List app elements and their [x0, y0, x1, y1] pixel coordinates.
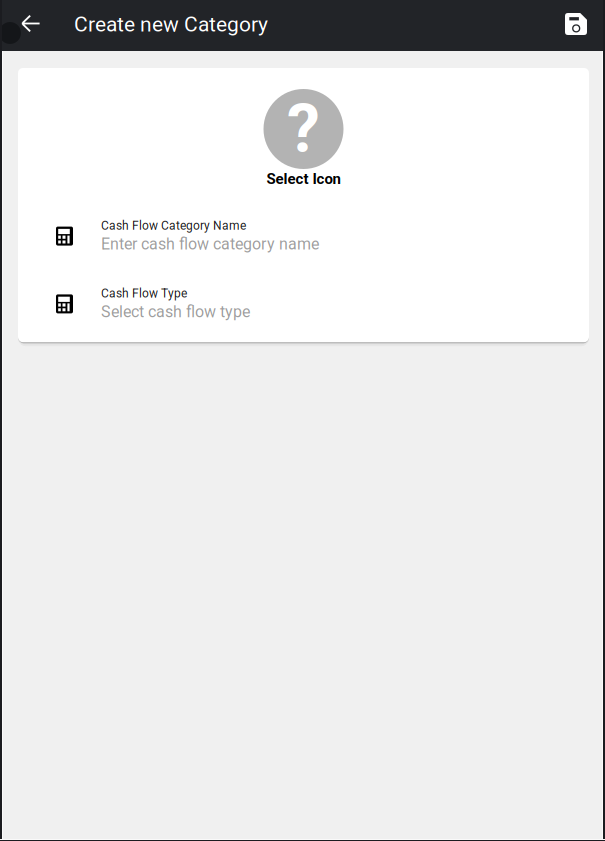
button[interactable]: Cash Flow Category Name	[18, 219, 589, 253]
button[interactable]: Back	[0, 0, 59, 51]
button[interactable]: Cash Flow Type	[18, 286, 589, 321]
staticText: Cash Flow Type	[101, 286, 187, 300]
staticText: Cash Flow Category Name	[101, 219, 246, 233]
staticText: Enter cash flow category name	[101, 235, 319, 253]
staticText: Create new Category	[74, 12, 268, 37]
button[interactable]: Save	[556, 0, 605, 51]
staticText: Select cash flow type	[101, 302, 250, 321]
staticText: ?	[287, 90, 320, 168]
staticText: Select Icon	[266, 170, 340, 188]
button[interactable]: ?	[18, 68, 589, 219]
